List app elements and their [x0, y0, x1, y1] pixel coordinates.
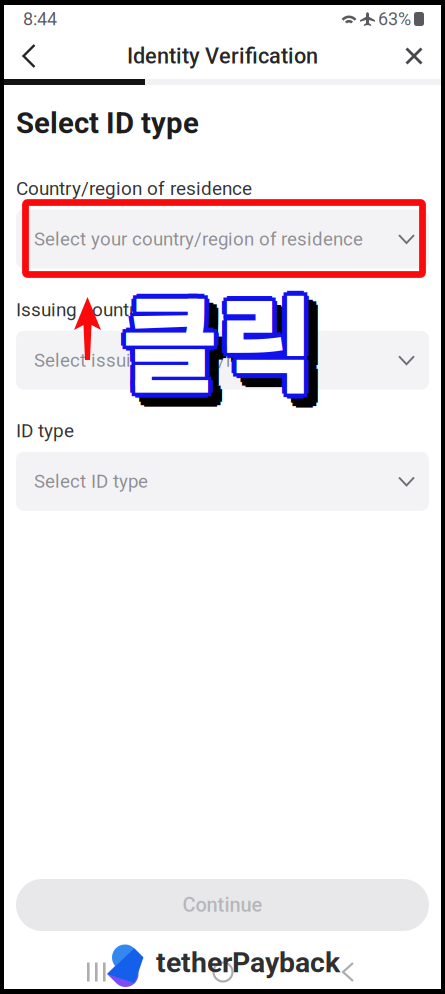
staticText: 클릭	[118, 259, 310, 410]
staticText: 클릭	[131, 272, 323, 423]
staticText: Country/region of residence	[16, 177, 252, 200]
staticText: Select ID type	[16, 106, 199, 140]
button[interactable]: Back	[6, 33, 52, 79]
button[interactable]: Close	[391, 33, 437, 79]
staticText: Continue	[182, 893, 262, 917]
staticText: 63%	[378, 8, 411, 30]
button[interactable]: Back	[324, 952, 372, 992]
staticText: 8:44	[23, 8, 57, 30]
button[interactable]: Recent apps	[72, 952, 120, 992]
staticText: 클릭	[125, 266, 317, 417]
staticText: ID type	[16, 420, 74, 442]
staticText: 클릭	[136, 272, 328, 423]
staticText: 클릭	[122, 268, 314, 419]
staticText: Identity Verification	[127, 43, 318, 69]
staticText: 클릭	[117, 263, 309, 414]
staticText: 클릭	[126, 272, 318, 423]
staticText: 클릭	[127, 263, 319, 414]
staticText: tetherPayback	[156, 946, 340, 979]
staticText: 클릭	[131, 267, 323, 418]
staticText: 클릭	[122, 263, 314, 414]
button[interactable]: Select issuing country/region	[16, 331, 429, 390]
button[interactable]: Home	[199, 952, 247, 992]
staticText: 클릭	[134, 275, 326, 426]
button[interactable]: Select ID type	[16, 452, 429, 511]
staticText: Select issuing country/region	[34, 349, 278, 371]
staticText: 클릭	[131, 277, 323, 428]
staticText: Select ID type	[34, 470, 148, 492]
staticText: 클릭	[122, 258, 314, 409]
staticText: 클릭	[127, 275, 319, 426]
staticText: 클릭	[125, 259, 317, 410]
staticText: Select your country/region of residence	[34, 228, 363, 250]
button[interactable]: Continue	[16, 879, 429, 931]
staticText: 클릭	[118, 266, 310, 417]
staticText: Issuing country/region	[16, 299, 206, 321]
staticText: 클릭	[134, 268, 326, 419]
staticText: 클릭	[127, 268, 319, 419]
button[interactable]: Select your country/region of residence	[16, 210, 429, 269]
